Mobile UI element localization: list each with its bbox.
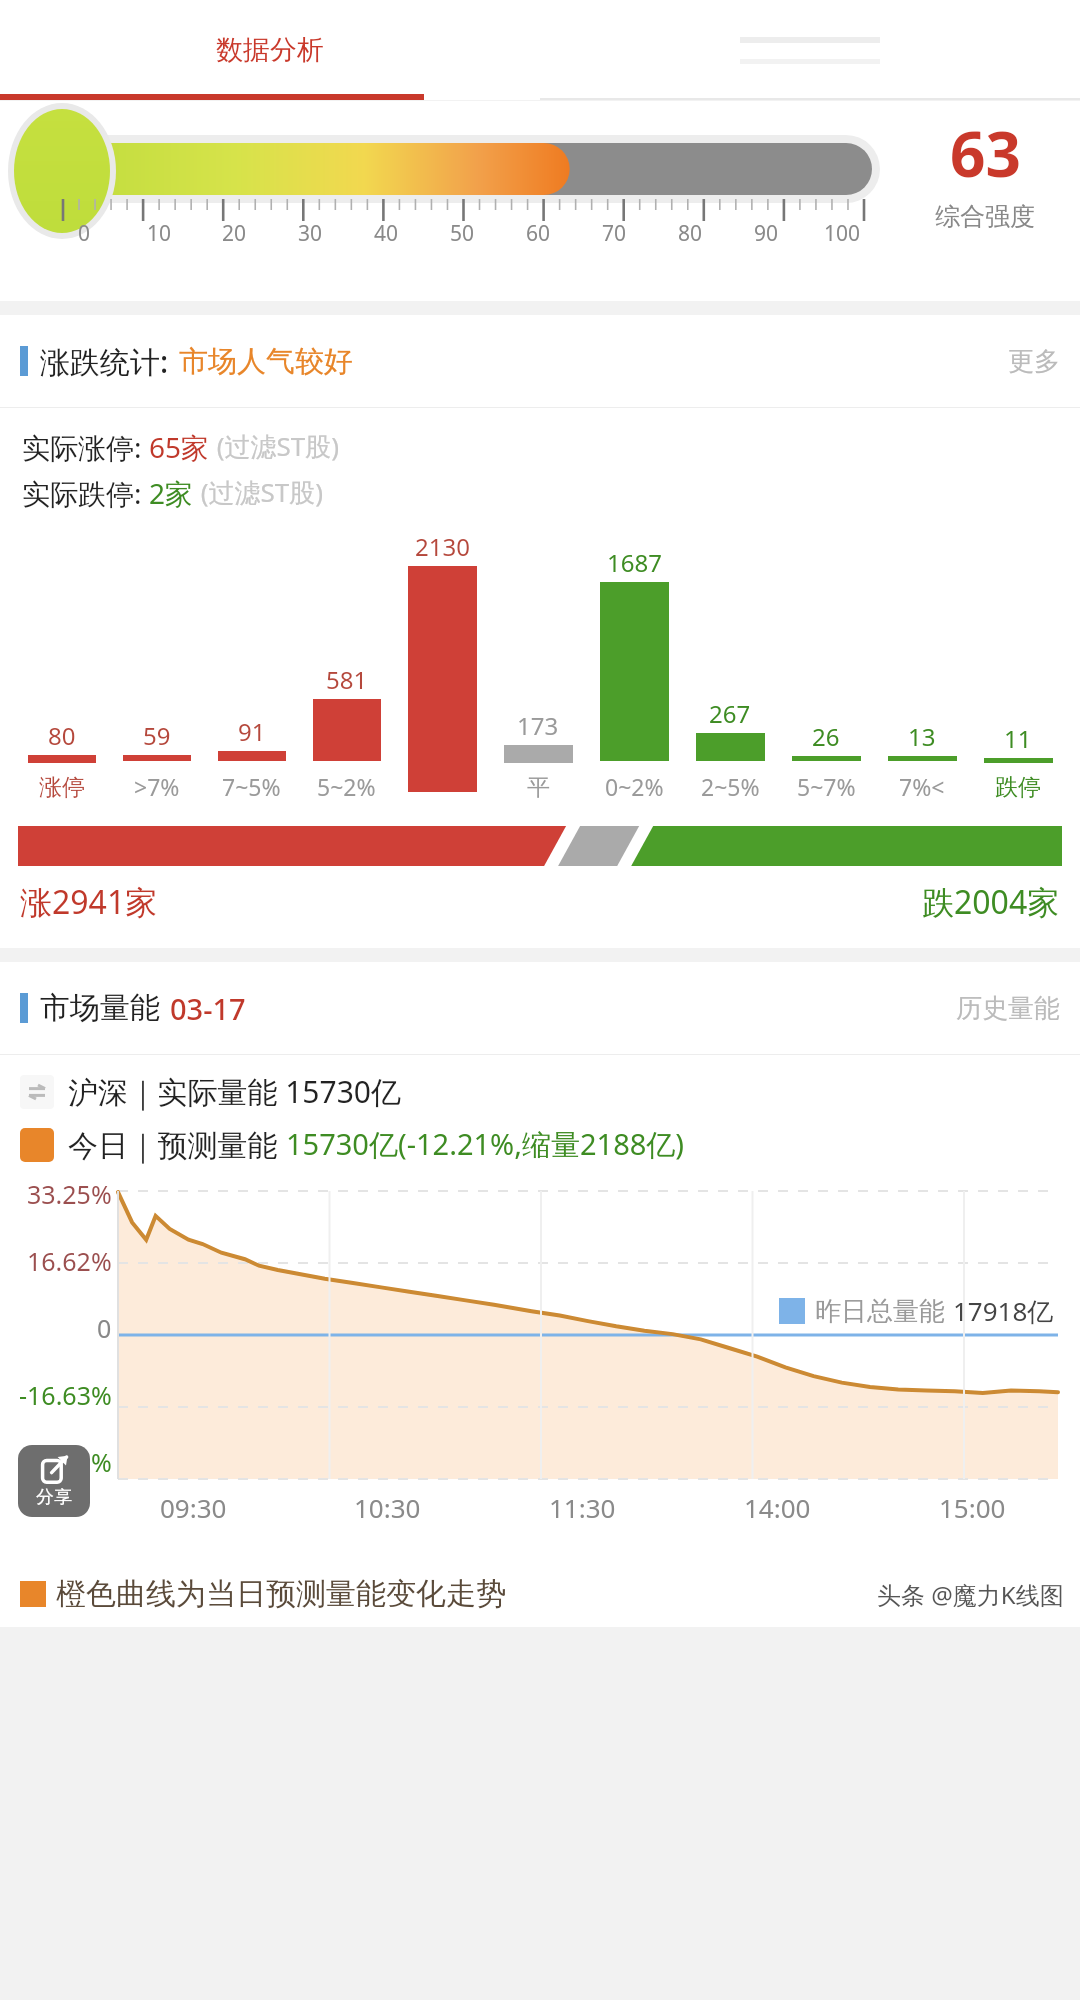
button[interactable]: 分享 — [18, 1445, 90, 1517]
staticText: 13 — [908, 720, 936, 753]
staticText: 市场人气较好 — [179, 343, 353, 380]
button[interactable]: 数据分析 — [0, 0, 540, 100]
staticText: 0 — [78, 219, 91, 248]
staticText: 15:00 — [939, 1490, 1006, 1525]
staticText: 100 — [824, 219, 861, 248]
staticText: 涨2941家 — [20, 880, 158, 924]
staticText: 59 — [143, 719, 171, 752]
staticText: 33.25% — [27, 1177, 112, 1211]
staticText: 今日｜预测量能 — [68, 1124, 286, 1165]
staticText: 更多 — [1008, 345, 1060, 378]
staticText: 涨停 — [39, 773, 85, 802]
button[interactable]: 历史量能 — [956, 992, 1060, 1025]
staticText: 实际涨停: — [22, 428, 149, 466]
staticText: 平 — [527, 773, 550, 802]
staticText: 7~5% — [222, 771, 281, 802]
staticText: 17918亿 — [953, 1293, 1054, 1329]
staticText: 橙色曲线为当日预测量能变化走势 — [56, 1575, 506, 1613]
staticText: 7%< — [899, 771, 945, 802]
staticText: 10 — [147, 219, 172, 248]
staticText: 11 — [1004, 722, 1032, 755]
staticText: 30 — [298, 219, 323, 248]
staticText: 跌2004家 — [922, 880, 1060, 924]
staticText: 分享 — [36, 1486, 72, 1509]
staticText: 数据分析 — [216, 33, 324, 67]
staticText: 昨日总量能 — [815, 1295, 945, 1328]
staticText: 2130 — [415, 530, 470, 563]
staticText: 63 — [950, 111, 1021, 195]
staticText: 跌停 — [995, 773, 1041, 802]
staticText: 581 — [326, 663, 368, 696]
staticText: 2~5% — [701, 771, 760, 802]
staticText: 173 — [517, 709, 559, 742]
staticText: 市场量能 — [40, 989, 160, 1027]
staticText: 1687 — [607, 546, 662, 579]
staticText: 26 — [812, 720, 840, 753]
button[interactable]: 更多 — [1008, 345, 1060, 378]
staticText: 0 — [97, 1311, 112, 1345]
staticText: 91 — [238, 715, 266, 748]
staticText: 09:30 — [160, 1490, 227, 1525]
staticText: 实际跌停: — [22, 474, 149, 512]
staticText: 40 — [374, 219, 399, 248]
staticText: 20 — [222, 219, 247, 248]
staticText: 70 — [602, 219, 627, 248]
button[interactable] — [540, 0, 1080, 100]
staticText: (过滤ST股) — [210, 428, 340, 464]
staticText: 16.62% — [27, 1244, 112, 1278]
staticText: 267 — [709, 697, 751, 730]
staticText: 15730亿(-12.21%,缩量2188亿) — [286, 1124, 685, 1164]
staticText: -33.25% — [19, 1445, 112, 1479]
button[interactable]: 切换 — [20, 1075, 54, 1109]
staticText: 综合强度 — [935, 201, 1035, 232]
staticText: 历史量能 — [956, 992, 1060, 1025]
staticText: -16.63% — [19, 1378, 112, 1412]
staticText: 涨跌统计: — [40, 341, 169, 382]
staticText: 2家 — [149, 474, 194, 512]
staticText: 14:00 — [744, 1490, 811, 1525]
staticText: 10:30 — [354, 1490, 421, 1525]
staticText: (过滤ST股) — [194, 474, 324, 510]
staticText: 5~2% — [317, 771, 376, 802]
staticText: 5~7% — [797, 771, 856, 802]
staticText: >7% — [134, 771, 180, 802]
staticText: 03-17 — [170, 989, 246, 1028]
staticText: 沪深｜实际量能 15730亿 — [68, 1071, 401, 1112]
staticText: 80 — [48, 719, 76, 752]
staticText: 0~2% — [605, 771, 664, 802]
staticText: 60 — [526, 219, 551, 248]
staticText: 11:30 — [549, 1490, 616, 1525]
staticText: 头条 @魔力K线图 — [877, 1578, 1064, 1611]
staticText: 65家 — [149, 428, 210, 466]
staticText: 80 — [678, 219, 703, 248]
staticText: 50 — [450, 219, 475, 248]
staticText: 90 — [754, 219, 779, 248]
